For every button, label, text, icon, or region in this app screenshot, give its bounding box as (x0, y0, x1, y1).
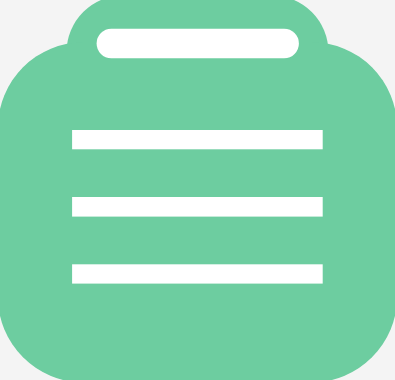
button[interactable]: Note line 3 (72, 264, 323, 283)
button[interactable]: Note line 2 (72, 197, 323, 217)
button[interactable]: Note title (67, 0, 329, 60)
button[interactable]: Notes (0, 0, 395, 380)
